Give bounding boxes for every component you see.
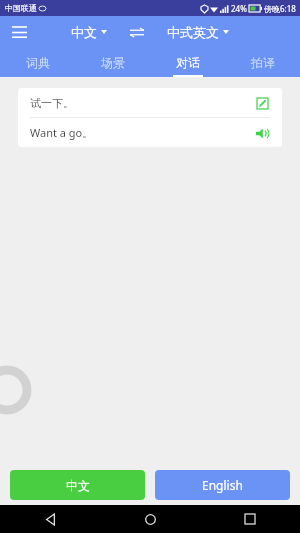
staticText: 试一下。 [30,96,74,110]
button[interactable]: Back [0,505,100,533]
staticText: 傍晚6:18 [264,3,296,14]
button[interactable]: Menu [4,17,34,47]
staticText: English [202,477,243,493]
button[interactable]: 中式英文 [163,21,233,43]
staticText: 拍译 [251,55,275,70]
button[interactable]: Home [100,505,200,533]
button[interactable]: Swap languages [125,20,149,44]
button[interactable]: 试一下。 [18,88,282,117]
button[interactable]: English [155,470,290,500]
button[interactable]: Play audio [254,125,270,141]
staticText: 词典 [26,55,50,70]
button[interactable]: Want a go。 [18,118,282,147]
button[interactable]: 拍译 [225,48,300,77]
staticText: 中文 [71,24,97,40]
button[interactable]: Recent apps [200,505,300,533]
staticText: 中式英文 [167,24,219,40]
button[interactable]: 对话 [150,48,225,77]
staticText: 对话 [176,55,200,70]
staticText: 中国联通 [5,3,37,13]
button[interactable]: 中文 [10,470,145,500]
button[interactable]: 词典 [0,48,75,77]
button[interactable]: 中文 [67,21,111,43]
staticText: 24% [231,3,247,14]
button[interactable]: 场景 [75,48,150,77]
staticText: 中文 [66,478,90,493]
button[interactable]: Edit [254,95,270,111]
staticText: 场景 [101,55,125,70]
staticText: Want a go。 [30,125,94,140]
